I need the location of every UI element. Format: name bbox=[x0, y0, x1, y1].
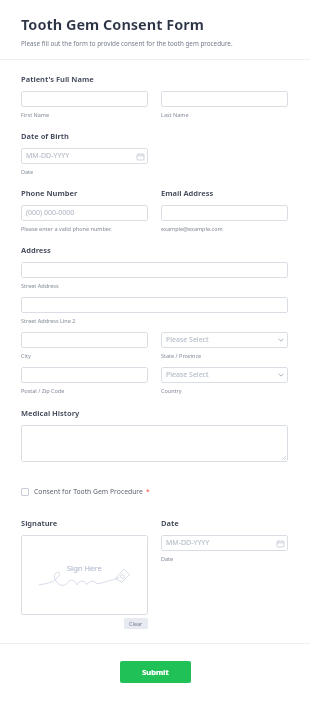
button[interactable]: State / Province bbox=[161, 332, 288, 348]
staticText: Submit bbox=[142, 667, 169, 677]
staticText: Address bbox=[21, 245, 51, 255]
staticText: First Name bbox=[21, 111, 50, 118]
button[interactable]: Consent for Tooth Gem Procedure bbox=[21, 487, 150, 496]
staticText: City bbox=[21, 352, 31, 359]
button[interactable]: Signature pad bbox=[21, 535, 148, 615]
button[interactable]: Date bbox=[161, 535, 288, 551]
staticText: Date bbox=[161, 555, 174, 562]
staticText: Consent for Tooth Gem Procedure bbox=[34, 487, 143, 496]
staticText: State / Province bbox=[161, 352, 202, 359]
staticText: example@example.com bbox=[161, 225, 223, 232]
button[interactable]: City bbox=[21, 332, 148, 348]
staticText: Postal / Zip Code bbox=[21, 387, 65, 394]
button[interactable]: Clear bbox=[124, 618, 148, 629]
staticText: Clear bbox=[129, 620, 143, 627]
staticText: Signature bbox=[21, 518, 58, 528]
button[interactable]: First Name bbox=[21, 91, 148, 107]
button[interactable]: Submit bbox=[120, 661, 191, 683]
staticText: Email Address bbox=[161, 188, 214, 198]
button[interactable]: Street Address Line 2 bbox=[21, 297, 288, 313]
staticText: * bbox=[146, 487, 150, 496]
button[interactable]: Phone Number bbox=[21, 205, 148, 221]
button[interactable]: Street Address bbox=[21, 262, 288, 278]
button[interactable]: Email Address bbox=[161, 205, 288, 221]
staticText: Patient's Full Name bbox=[21, 74, 94, 84]
staticText: MM-DD-YYYY bbox=[26, 151, 70, 161]
staticText: Date of Birth bbox=[21, 131, 69, 141]
button[interactable]: Medical History bbox=[21, 425, 288, 462]
staticText: (000) 000-0000 bbox=[26, 208, 75, 218]
staticText: Date bbox=[21, 168, 34, 175]
staticText: Street Address Line 2 bbox=[21, 317, 76, 324]
staticText: Please enter a valid phone number. bbox=[21, 225, 112, 232]
staticText: MM-DD-YYYY bbox=[166, 538, 210, 548]
staticText: Last Name bbox=[161, 111, 189, 118]
button[interactable]: Last Name bbox=[161, 91, 288, 107]
staticText: Country bbox=[161, 387, 182, 394]
staticText: Medical History bbox=[21, 408, 80, 418]
button[interactable]: Date of Birth bbox=[21, 148, 148, 164]
staticText: Please fill out the form to provide cons… bbox=[21, 39, 233, 48]
staticText: Date bbox=[161, 518, 179, 528]
staticText: Phone Number bbox=[21, 188, 78, 198]
staticText: Street Address bbox=[21, 282, 59, 289]
staticText: Please Select bbox=[166, 335, 209, 345]
button[interactable]: Country bbox=[161, 367, 288, 383]
staticText: Tooth Gem Consent Form bbox=[21, 14, 204, 34]
button[interactable]: Postal / Zip Code bbox=[21, 367, 148, 383]
staticText: Please Select bbox=[166, 370, 209, 380]
staticText: Sign Here bbox=[67, 563, 102, 573]
